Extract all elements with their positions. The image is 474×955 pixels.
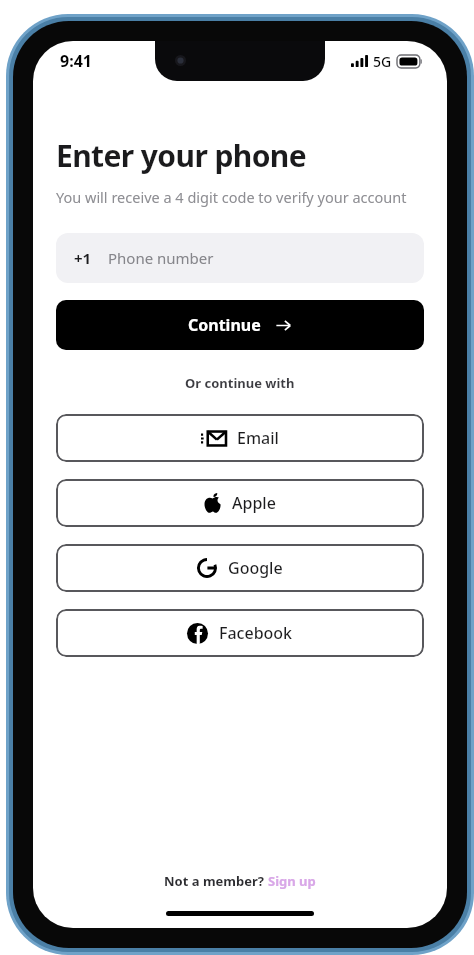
staticText: You will receive a 4 digit code to verif… — [56, 187, 407, 207]
button[interactable]: Google — [56, 544, 424, 592]
staticText: 9:41 — [60, 50, 92, 72]
staticText: 5G — [373, 52, 392, 71]
button[interactable]: Sign up — [268, 872, 316, 890]
staticText: Enter your phone — [56, 135, 307, 176]
staticText: Apple — [232, 492, 276, 514]
button[interactable]: Continue — [56, 300, 424, 350]
staticText: Or continue with — [185, 374, 295, 392]
button[interactable]: Apple — [56, 479, 424, 527]
staticText: Facebook — [219, 622, 293, 644]
staticText: Phone number — [108, 248, 214, 268]
staticText: Continue — [188, 314, 261, 336]
button[interactable]: +1 — [56, 233, 424, 283]
staticText: Sign up — [268, 872, 316, 890]
button[interactable]: Facebook — [56, 609, 424, 657]
staticText: Not a member? — [164, 872, 268, 890]
staticText: Email — [237, 427, 279, 449]
staticText: +1 — [74, 248, 92, 268]
button[interactable]: Email — [56, 414, 424, 462]
staticText: Google — [228, 557, 283, 579]
